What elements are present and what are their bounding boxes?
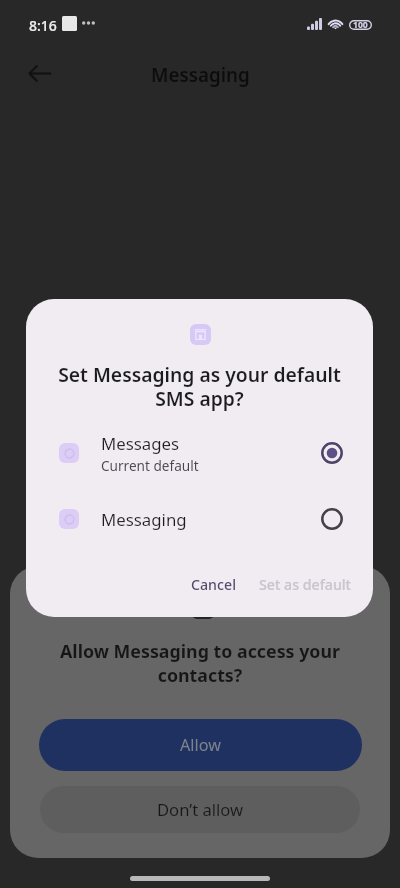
button[interactable]: Back xyxy=(15,49,63,97)
staticText: Messaging xyxy=(101,508,187,531)
staticText: Set as default xyxy=(259,575,352,594)
button[interactable]: Don’t allow xyxy=(40,786,360,833)
staticText: 8:16 xyxy=(29,16,57,35)
button[interactable]: Messaging xyxy=(26,493,373,545)
staticText: Cancel xyxy=(191,575,236,594)
staticText: 100 xyxy=(353,19,368,31)
button[interactable]: Allow xyxy=(39,719,362,771)
staticText: Don’t allow xyxy=(157,798,244,821)
button[interactable]: Cancel xyxy=(179,566,248,603)
staticText: Set Messaging as your default SMS app? xyxy=(48,361,351,411)
staticText: Messages xyxy=(101,432,180,455)
staticText: Allow xyxy=(180,734,221,756)
staticText: Current default xyxy=(101,456,199,475)
button[interactable]: Messages xyxy=(26,427,373,479)
staticText: Messaging xyxy=(151,62,250,88)
button[interactable]: Set as default xyxy=(247,566,364,603)
staticText: Allow Messaging to access your contacts? xyxy=(38,639,362,687)
